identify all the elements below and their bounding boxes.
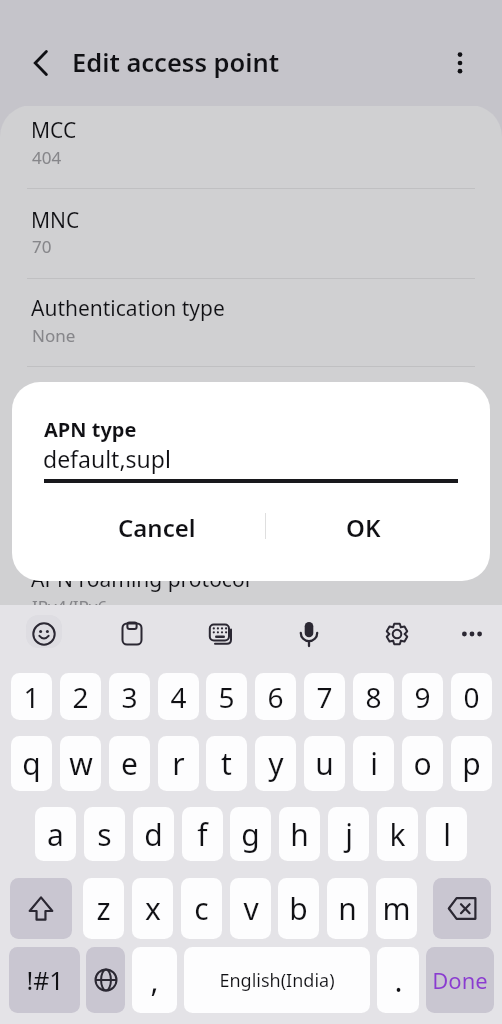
staticText: v xyxy=(243,888,259,929)
staticText: d xyxy=(144,814,163,855)
button[interactable]: 1 xyxy=(11,673,52,720)
button[interactable] xyxy=(0,368,502,456)
staticText: 4 xyxy=(170,678,187,716)
staticText: m xyxy=(382,888,411,929)
button[interactable]: Shift xyxy=(10,878,72,939)
button[interactable]: k xyxy=(377,807,418,861)
staticText: None xyxy=(32,324,76,347)
staticText: English(India) xyxy=(219,968,335,993)
button[interactable] xyxy=(0,101,502,189)
staticText: Cancel xyxy=(118,511,196,544)
staticText: APN roaming protocol xyxy=(31,565,251,594)
button[interactable]: d xyxy=(133,807,174,861)
button[interactable]: , xyxy=(132,947,177,1013)
button[interactable]: More options xyxy=(437,40,483,86)
button[interactable]: OK xyxy=(266,494,490,554)
button[interactable]: h xyxy=(279,807,320,861)
button[interactable]: Settings xyxy=(375,612,419,656)
button[interactable]: v xyxy=(230,878,271,939)
button[interactable]: g xyxy=(230,807,271,861)
button[interactable]: q xyxy=(11,736,52,791)
staticText: q xyxy=(22,743,41,784)
staticText: g xyxy=(241,814,260,855)
staticText: 8 xyxy=(365,678,382,716)
button[interactable]: l xyxy=(426,807,467,861)
button[interactable]: n xyxy=(327,878,368,939)
staticText: OK xyxy=(346,511,381,544)
staticText: . xyxy=(394,960,403,1001)
staticText: r xyxy=(172,743,185,784)
button[interactable]: a xyxy=(35,807,76,861)
button[interactable]: 3 xyxy=(109,673,150,720)
staticText: e xyxy=(121,743,138,784)
button[interactable]: Done xyxy=(426,947,494,1013)
staticText: Edit access point xyxy=(72,45,280,80)
button[interactable]: Change language xyxy=(86,947,125,1013)
staticText: Done xyxy=(432,965,488,995)
staticText: 404 xyxy=(32,146,62,169)
button[interactable]: Clipboard xyxy=(110,612,154,656)
staticText: s xyxy=(97,814,112,855)
button[interactable]: j xyxy=(328,807,369,861)
staticText: 1 xyxy=(23,678,40,716)
staticText: MNC xyxy=(31,206,80,235)
button[interactable]: English(India) xyxy=(184,947,370,1013)
button[interactable]: w xyxy=(60,736,101,791)
button[interactable]: Voice input xyxy=(287,612,331,656)
button[interactable]: Cancel xyxy=(12,494,265,554)
button[interactable]: p xyxy=(451,736,492,791)
button[interactable]: !#1 xyxy=(9,947,80,1013)
button[interactable] xyxy=(0,549,502,637)
button[interactable]: f xyxy=(182,807,223,861)
button[interactable]: Keyboard layout xyxy=(198,612,242,656)
staticText: w xyxy=(69,743,93,784)
staticText: a xyxy=(47,814,64,855)
staticText: p xyxy=(462,743,481,784)
button[interactable] xyxy=(0,279,502,367)
button[interactable]: e xyxy=(109,736,150,791)
button[interactable]: x xyxy=(132,878,173,939)
staticText: default,supl xyxy=(32,413,127,436)
button[interactable]: Navigate up xyxy=(18,40,64,86)
button[interactable]: 8 xyxy=(353,673,394,720)
staticText: , xyxy=(150,960,159,1001)
staticText: 6 xyxy=(267,678,284,716)
staticText: z xyxy=(96,888,111,929)
staticText: MCC xyxy=(31,116,77,145)
button[interactable]: 4 xyxy=(158,673,199,720)
staticText: 3 xyxy=(121,678,138,716)
button[interactable]: More options xyxy=(450,612,494,656)
button[interactable]: m xyxy=(376,878,417,939)
staticText: Authentication type xyxy=(31,294,225,323)
button[interactable]: 6 xyxy=(255,673,296,720)
staticText: y xyxy=(268,743,284,784)
button[interactable] xyxy=(0,190,502,278)
button[interactable]: i xyxy=(353,736,394,791)
staticText: l xyxy=(443,814,451,855)
staticText: c xyxy=(194,888,209,929)
button[interactable]: r xyxy=(158,736,199,791)
button[interactable]: 9 xyxy=(402,673,443,720)
button[interactable]: o xyxy=(402,736,443,791)
button[interactable]: y xyxy=(255,736,296,791)
button[interactable]: t xyxy=(206,736,247,791)
button[interactable]: u xyxy=(304,736,345,791)
button[interactable]: b xyxy=(278,878,319,939)
staticText: IPv4/IPv6 xyxy=(32,595,108,618)
button[interactable]: s xyxy=(84,807,125,861)
staticText: i xyxy=(370,743,378,784)
button[interactable]: z xyxy=(83,878,124,939)
button[interactable]: 7 xyxy=(304,673,345,720)
staticText: u xyxy=(315,743,334,784)
button[interactable]: 2 xyxy=(60,673,101,720)
button[interactable]: Backspace xyxy=(433,878,491,939)
staticText: k xyxy=(389,814,406,855)
button[interactable]: 5 xyxy=(206,673,247,720)
staticText: 5 xyxy=(218,678,235,716)
staticText: 7 xyxy=(316,678,333,716)
button[interactable]: 0 xyxy=(451,673,492,720)
button[interactable]: Emoji xyxy=(22,612,66,656)
button[interactable]: . xyxy=(377,947,419,1013)
button[interactable]: c xyxy=(181,878,222,939)
